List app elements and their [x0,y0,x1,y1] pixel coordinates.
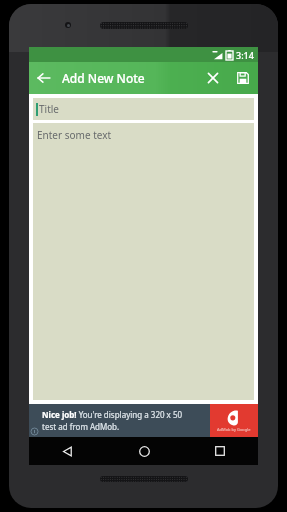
staticText: Add New Note [62,70,198,86]
staticText: test ad from AdMob. [42,421,120,432]
staticText: 3:14 [236,49,254,61]
button[interactable]: Save note [228,62,258,94]
button[interactable]: Back [29,437,106,465]
button[interactable]: Home [106,437,182,465]
staticText: Enter some text [37,128,112,142]
button[interactable]: Title [33,98,254,120]
staticText: Title [39,102,59,116]
button[interactable]: Recent apps [182,437,258,465]
button[interactable]: Discard [198,62,228,94]
button[interactable]: Enter some text [33,123,254,400]
button[interactable]: Navigate up [29,62,59,94]
staticText: Nice job! You're displaying a 320 x 50 [42,409,183,420]
staticText: AdMob by Google [217,427,251,432]
button[interactable]: Nice job! You're displaying a 320 x 50 [29,404,258,437]
